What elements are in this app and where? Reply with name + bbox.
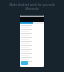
staticText: Make Android work for you with Motorola: [3, 3, 61, 10]
button[interactable]: [21, 61, 28, 65]
